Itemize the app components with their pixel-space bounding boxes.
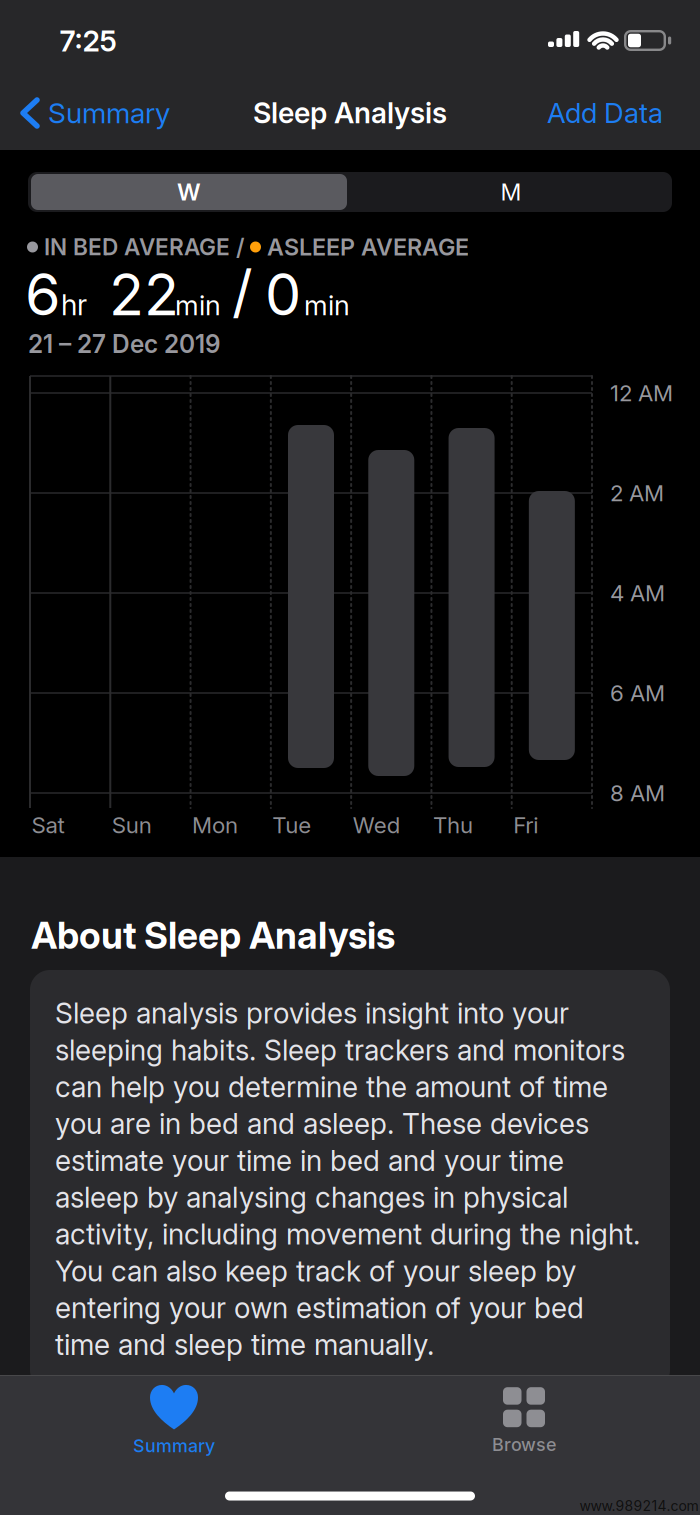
- staticText: 7:25: [59, 24, 116, 58]
- staticText: Fri: [513, 811, 538, 838]
- staticText: Wed: [353, 811, 401, 838]
- staticText: Sun: [112, 811, 152, 838]
- staticText: www.989214.com: [579, 1497, 698, 1514]
- staticText: Summary: [48, 96, 170, 130]
- button[interactable]: Browse: [434, 1372, 614, 1467]
- staticText: W: [177, 178, 201, 206]
- staticText: Tue: [272, 811, 311, 838]
- button[interactable]: Add Data: [547, 96, 663, 130]
- staticText: hr: [61, 288, 87, 322]
- staticText: Summary: [133, 1435, 215, 1456]
- staticText: 21 – 27 Dec 2019: [28, 329, 220, 359]
- staticText: 8 AM: [610, 779, 665, 806]
- staticText: 6: [25, 260, 61, 329]
- staticText: 12 AM: [610, 379, 673, 406]
- staticText: /: [232, 257, 253, 326]
- staticText: Sleep analysis provides insight into you…: [55, 996, 640, 1362]
- staticText: About Sleep Analysis: [31, 913, 395, 958]
- staticText: min: [175, 289, 221, 322]
- button[interactable]: Summary: [84, 1372, 264, 1467]
- staticText: Sleep Analysis: [253, 96, 447, 130]
- staticText: 6 AM: [610, 679, 665, 706]
- staticText: Thu: [433, 811, 473, 838]
- staticText: Mon: [192, 811, 238, 838]
- button[interactable]: Back to Summary: [20, 96, 170, 130]
- staticText: Add Data: [547, 96, 663, 130]
- staticText: 2 AM: [610, 479, 664, 506]
- staticText: ASLEEP AVERAGE: [267, 233, 469, 261]
- staticText: Browse: [492, 1434, 556, 1455]
- staticText: M: [500, 178, 521, 206]
- staticText: 0: [265, 260, 301, 329]
- staticText: 4 AM: [610, 579, 665, 606]
- staticText: 22: [109, 260, 179, 329]
- staticText: IN BED AVERAGE /: [44, 233, 244, 261]
- button[interactable]: M: [350, 172, 672, 212]
- button[interactable]: W: [28, 172, 350, 212]
- staticText: Sat: [31, 811, 64, 838]
- staticText: min: [304, 289, 350, 322]
